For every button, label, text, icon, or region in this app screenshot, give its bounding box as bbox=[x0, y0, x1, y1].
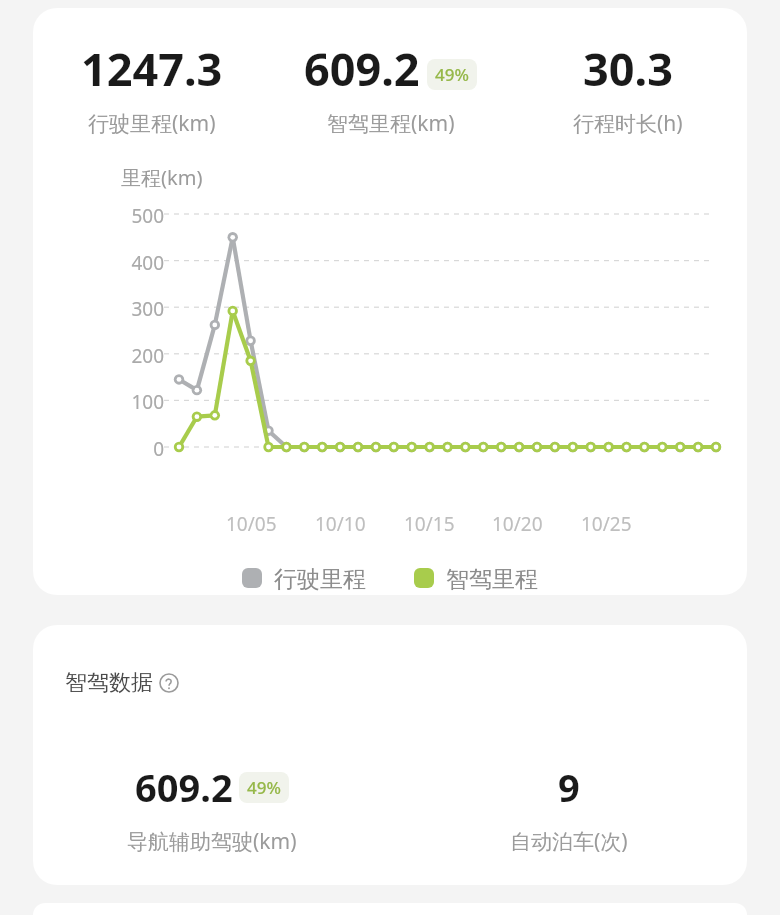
staticText: 10/10 bbox=[315, 511, 366, 537]
staticText: 300 bbox=[131, 296, 164, 322]
other: Help about 智驾数据 bbox=[159, 673, 179, 693]
staticText: 49% bbox=[435, 63, 469, 86]
staticText: 智驾里程(km) bbox=[327, 109, 455, 138]
staticText: 10/15 bbox=[404, 511, 455, 537]
staticText: 9 bbox=[558, 761, 580, 813]
staticText: 10/20 bbox=[492, 511, 543, 537]
button[interactable]: 行驶里程 bbox=[238, 561, 370, 595]
staticText: 10/25 bbox=[581, 511, 632, 537]
staticText: 500 bbox=[131, 203, 164, 229]
staticText: 智驾数据 bbox=[65, 669, 153, 697]
staticText: 609.2 bbox=[304, 38, 420, 99]
staticText: 导航辅助驾驶(km) bbox=[127, 827, 297, 856]
staticText: 自动泊车(次) bbox=[510, 827, 628, 856]
staticText: 0 bbox=[153, 436, 164, 462]
staticText: 609.2 bbox=[135, 761, 233, 813]
staticText: 30.3 bbox=[583, 38, 673, 99]
staticText: 400 bbox=[131, 250, 164, 276]
button[interactable]: 智驾里程 bbox=[410, 561, 542, 595]
staticText: 49% bbox=[247, 776, 281, 799]
staticText: 200 bbox=[131, 343, 164, 369]
staticText: 行驶里程 bbox=[274, 565, 366, 591]
staticText: 行程时长(h) bbox=[573, 109, 683, 138]
staticText: 1247.3 bbox=[81, 38, 223, 99]
staticText: 智驾里程 bbox=[446, 565, 538, 591]
staticText: 100 bbox=[131, 389, 164, 415]
staticText: 里程(km) bbox=[121, 164, 203, 191]
button[interactable]: 智驾数据 bbox=[65, 667, 179, 699]
staticText: 行驶里程(km) bbox=[88, 109, 216, 138]
staticText: 10/05 bbox=[226, 511, 277, 537]
